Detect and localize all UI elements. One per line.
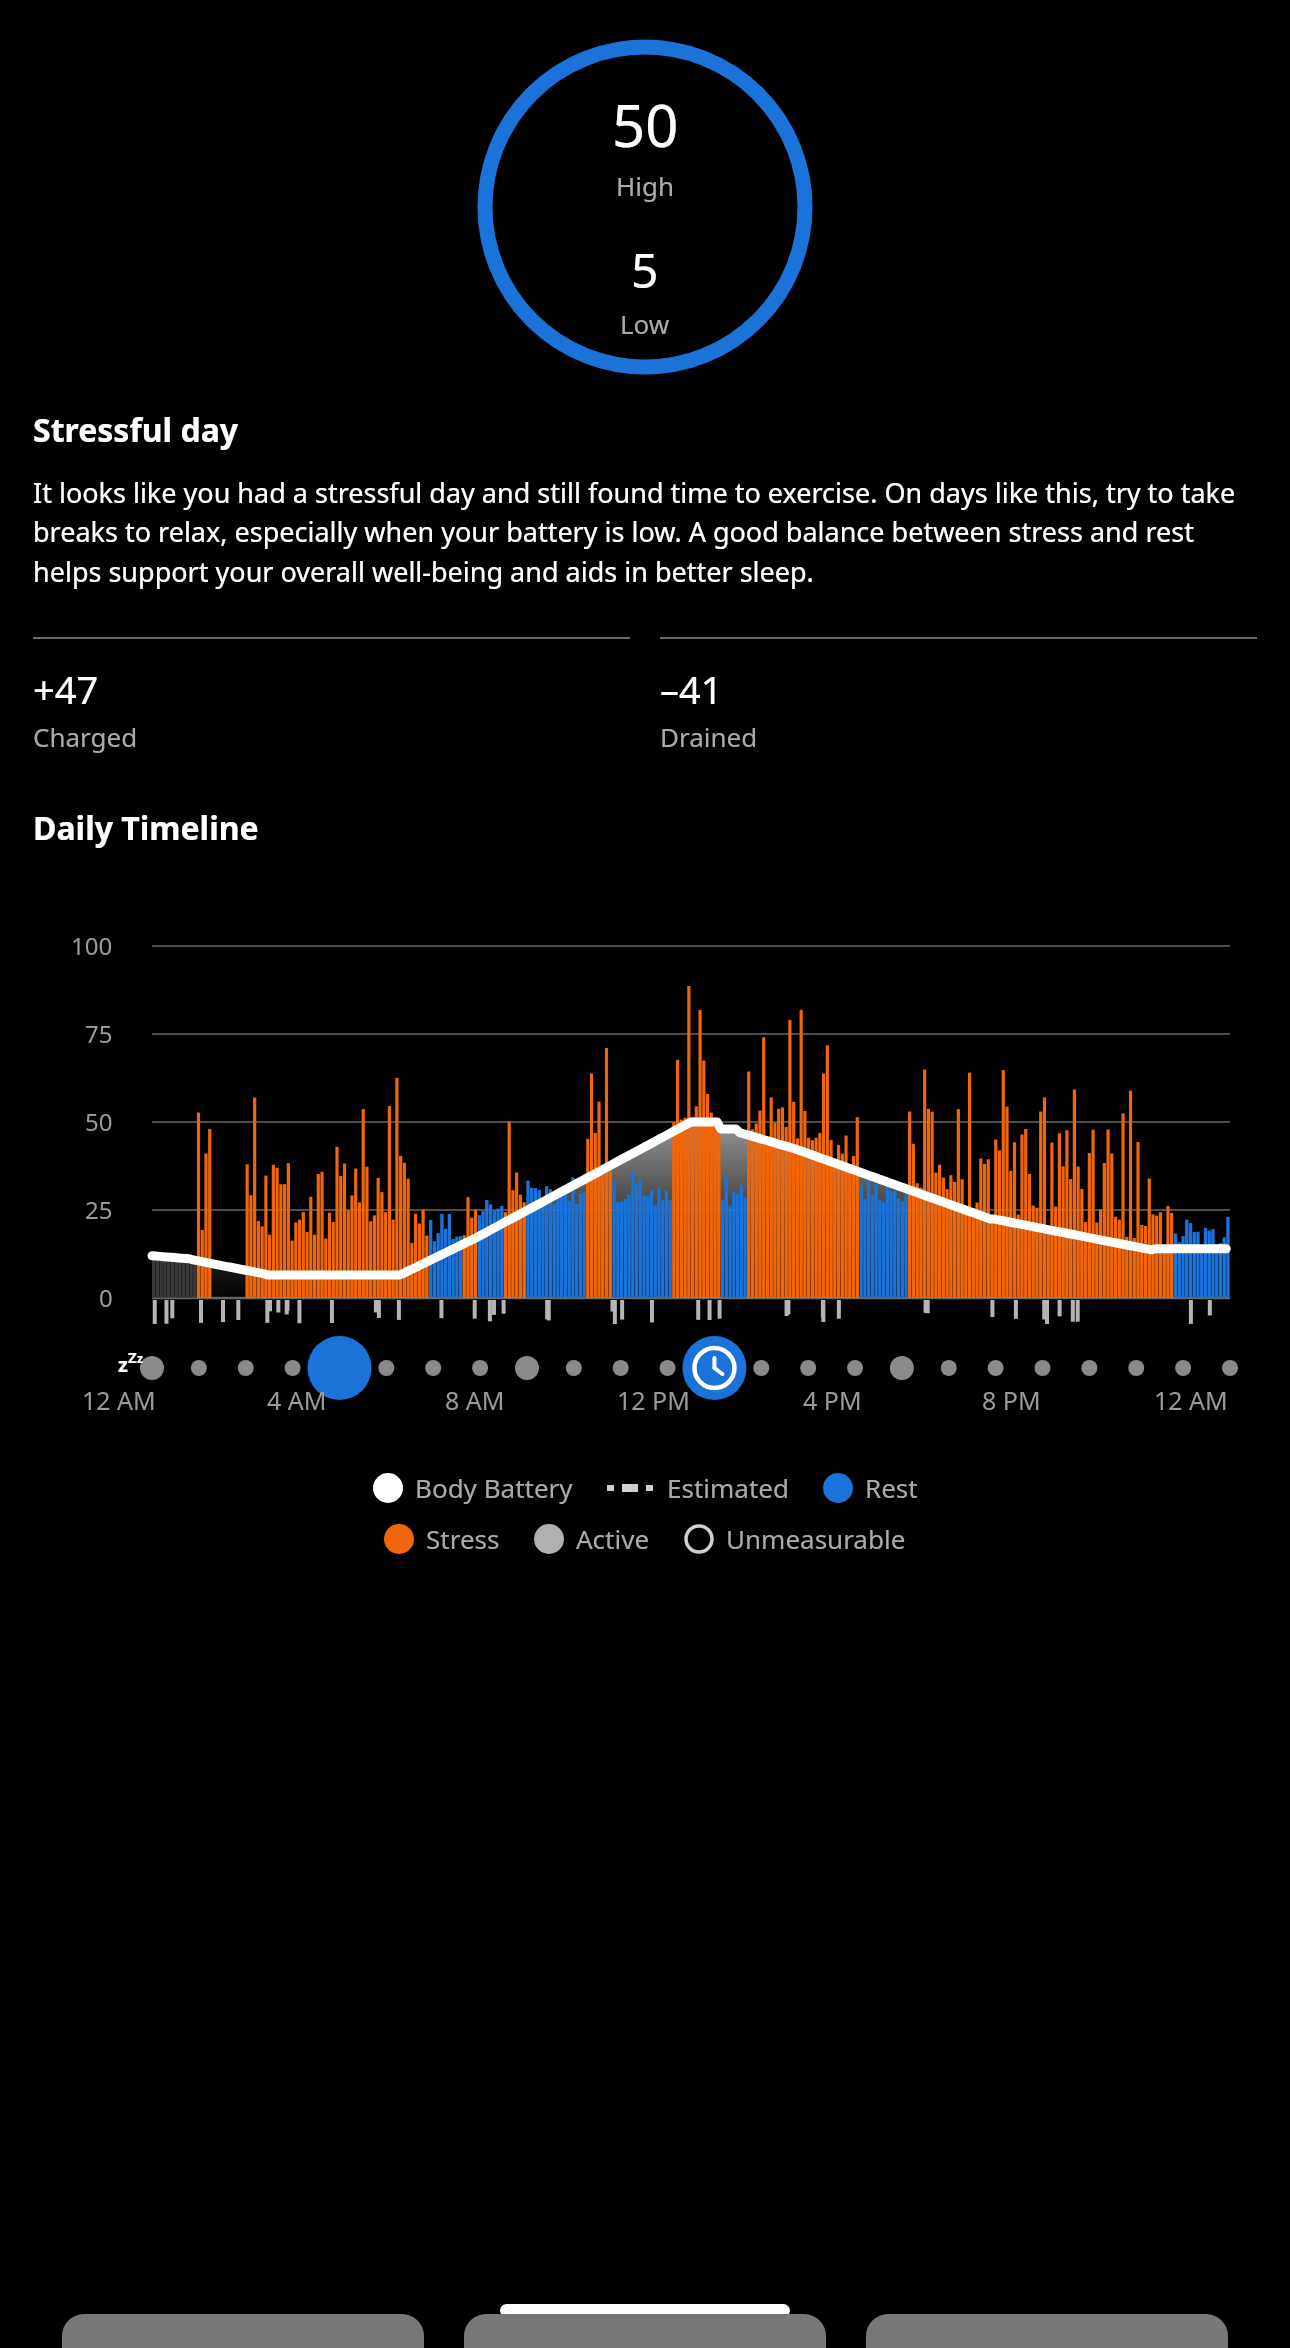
staticText: 8 AM xyxy=(445,1383,505,1417)
staticText: Stress xyxy=(426,1521,500,1556)
button[interactable]: –41 xyxy=(660,637,1257,754)
staticText: 100 xyxy=(71,929,113,962)
staticText: 12 PM xyxy=(617,1383,690,1417)
button[interactable]: +47 xyxy=(33,637,630,754)
button[interactable] xyxy=(62,2314,424,2348)
staticText: 12 AM xyxy=(1154,1383,1228,1417)
staticText: 4 AM xyxy=(267,1383,327,1417)
staticText: Estimated xyxy=(667,1470,789,1505)
staticText: Charged xyxy=(33,719,138,754)
button[interactable]: Sleep xyxy=(0,1338,1290,1398)
staticText: 50 xyxy=(612,85,679,164)
staticText: Z xyxy=(128,1347,137,1367)
staticText: 5 xyxy=(631,237,659,302)
staticText: Low xyxy=(620,306,670,341)
staticText: Active xyxy=(576,1521,650,1556)
button[interactable] xyxy=(866,2314,1228,2348)
staticText: z xyxy=(118,1351,128,1378)
staticText: Drained xyxy=(660,719,758,754)
staticText: 8 PM xyxy=(982,1383,1041,1417)
staticText: 50 xyxy=(85,1105,113,1138)
staticText: 12 AM xyxy=(82,1383,156,1417)
button[interactable] xyxy=(464,2314,826,2348)
staticText: Body Battery xyxy=(415,1470,573,1505)
staticText: –41 xyxy=(660,663,723,715)
staticText: Daily Timeline xyxy=(33,806,259,850)
staticText: 4 PM xyxy=(803,1383,862,1417)
staticText: 75 xyxy=(85,1017,113,1050)
staticText: 25 xyxy=(85,1193,113,1226)
staticText: 0 xyxy=(99,1281,113,1314)
staticText: +47 xyxy=(33,663,99,715)
staticText: High xyxy=(616,168,675,203)
staticText: Stressful day xyxy=(33,408,239,452)
staticText: Rest xyxy=(865,1470,918,1505)
staticText: It looks like you had a stressful day an… xyxy=(33,474,1257,590)
staticText: Unmeasurable xyxy=(726,1521,906,1556)
staticText: z xyxy=(137,1350,143,1366)
